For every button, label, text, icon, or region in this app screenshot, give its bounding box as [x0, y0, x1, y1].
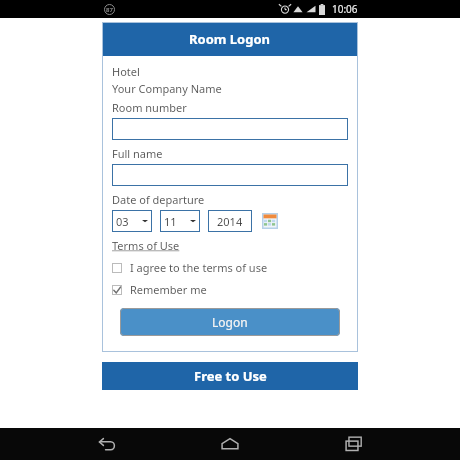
button[interactable]: 11: [160, 210, 200, 232]
staticText: Room number: [112, 100, 187, 115]
button[interactable]: [112, 164, 348, 186]
staticText: Free to Use: [194, 367, 267, 385]
staticText: Your Company Name: [112, 81, 222, 96]
staticText: 87: [106, 6, 113, 14]
button[interactable]: 03: [112, 210, 152, 232]
staticText: 11: [164, 214, 177, 229]
button[interactable]: Free to Use: [102, 362, 358, 390]
staticText: 10:06: [332, 2, 358, 16]
button[interactable]: I agree to the terms of use: [112, 260, 348, 275]
button[interactable]: Room Logon: [102, 22, 358, 56]
button[interactable]: Terms of Use: [112, 238, 180, 253]
button[interactable]: Home: [213, 428, 247, 460]
staticText: 2014: [217, 214, 243, 229]
button[interactable]: [112, 118, 348, 140]
staticText: I agree to the terms of use: [130, 260, 268, 275]
button[interactable]: Recents: [337, 428, 371, 460]
staticText: Remember me: [130, 282, 207, 297]
staticText: Hotel: [112, 64, 140, 79]
staticText: 03: [116, 214, 129, 229]
staticText: Room Logon: [189, 30, 271, 48]
staticText: Date of departure: [112, 192, 205, 207]
staticText: Logon: [212, 314, 248, 330]
staticText: Full name: [112, 146, 163, 161]
button[interactable]: 2014: [208, 210, 252, 232]
button[interactable]: Logon: [120, 308, 340, 336]
button[interactable]: Pick date: [262, 213, 278, 229]
button[interactable]: Remember me: [112, 282, 348, 297]
button[interactable]: Back: [90, 428, 124, 460]
